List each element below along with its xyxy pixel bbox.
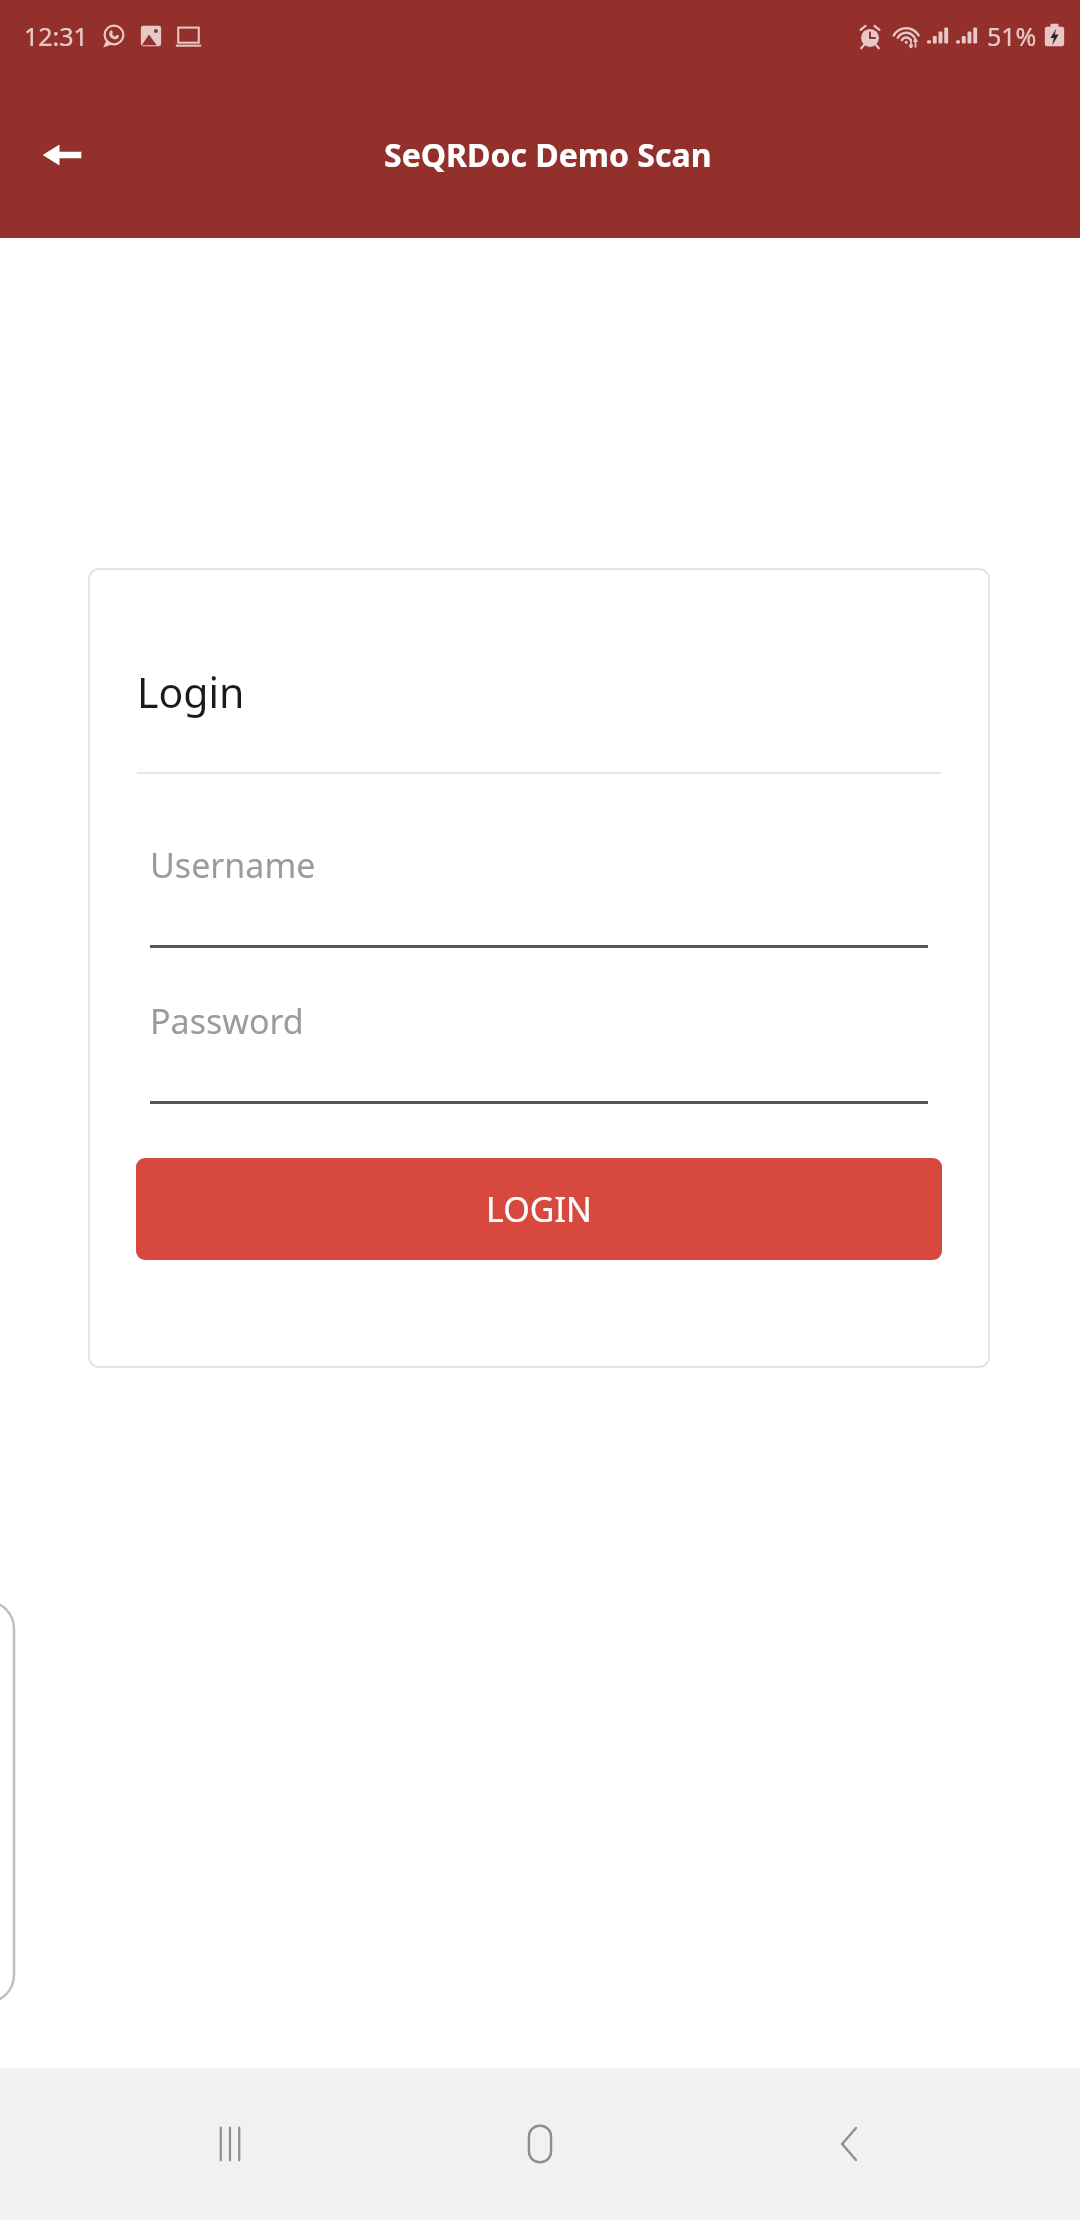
staticText: Password	[150, 998, 304, 1044]
button[interactable]: Username	[150, 836, 928, 948]
staticText: 12:31	[24, 19, 88, 53]
button[interactable]: Password	[150, 992, 928, 1104]
staticText: 51%	[987, 19, 1037, 53]
button[interactable]: Back	[770, 2068, 930, 2220]
button[interactable]: LOGIN	[136, 1158, 942, 1260]
staticText: Login	[137, 664, 245, 720]
button[interactable]: Back	[22, 115, 102, 195]
staticText: Username	[150, 842, 316, 888]
staticText: LOGIN	[486, 1186, 592, 1232]
button[interactable]: Recent apps	[150, 2068, 310, 2220]
button[interactable]: Home	[460, 2068, 620, 2220]
staticText: SeQRDoc Demo Scan	[384, 133, 712, 177]
